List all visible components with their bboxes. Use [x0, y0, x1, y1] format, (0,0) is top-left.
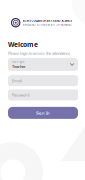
staticText: User Type	[12, 60, 25, 63]
staticText: Teacher	[12, 64, 26, 69]
button[interactable]: Sign In	[8, 107, 78, 119]
staticText: Sign In	[36, 110, 50, 115]
staticText: Please login to access the attendance	[8, 50, 70, 56]
staticText: Welcome	[8, 40, 38, 49]
button[interactable]: Password	[8, 89, 78, 100]
staticText: AFFILIATED TO UNIVERSITY OF MUMBAI	[23, 23, 72, 26]
button[interactable]: User Type	[8, 58, 78, 71]
button[interactable]: Email	[8, 75, 78, 86]
staticText: Email	[12, 78, 22, 83]
staticText: Password	[12, 92, 29, 97]
staticText: ACME COLLEGE OF ARTS AND SCIENCE	[23, 19, 72, 22]
